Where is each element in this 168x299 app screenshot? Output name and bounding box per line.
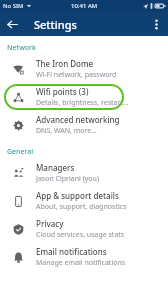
- button[interactable]: The Iron Dome: [0, 55, 168, 83]
- button[interactable]: Managers: [0, 159, 168, 187]
- button[interactable]: Back: [0, 12, 24, 36]
- staticText: DNS, WAN, more…: [36, 126, 97, 136]
- staticText: Jason Cipriani (you): [36, 174, 100, 184]
- button[interactable]: Wifi points (3): [0, 83, 168, 111]
- button[interactable]: App & support details: [0, 187, 168, 215]
- staticText: Wi-Fi network, password: [36, 70, 117, 80]
- button[interactable]: Advanced networking: [0, 111, 168, 139]
- staticText: Wifi points (3): [36, 86, 89, 97]
- staticText: General: [7, 147, 34, 157]
- staticText: No SIM: [3, 2, 24, 10]
- button[interactable]: Privacy: [0, 215, 168, 243]
- staticText: Email notifications: [36, 246, 107, 257]
- staticText: Privacy: [36, 218, 64, 229]
- button[interactable]: More options: [144, 12, 168, 36]
- staticText: Network: [7, 43, 36, 53]
- staticText: Details, brightness, restart…: [36, 98, 129, 108]
- staticText: Settings: [34, 17, 77, 32]
- staticText: App & support details: [36, 190, 119, 201]
- staticText: About, support, diagnostics: [36, 202, 127, 212]
- staticText: Manage email notifications: [36, 258, 126, 268]
- staticText: Advanced networking: [36, 114, 120, 125]
- staticText: Cloud services, usage stats: [36, 230, 125, 240]
- staticText: The Iron Dome: [36, 58, 94, 69]
- button[interactable]: Email notifications: [0, 243, 168, 271]
- staticText: Managers: [36, 162, 75, 173]
- staticText: 10:41 AM: [71, 2, 98, 10]
